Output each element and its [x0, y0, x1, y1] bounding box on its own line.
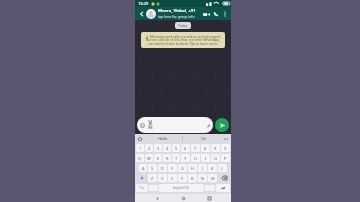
- button[interactable]: L: [218, 164, 227, 172]
- staticText: I: [205, 156, 207, 161]
- staticText: W: [147, 156, 151, 161]
- button[interactable]: 2: [145, 144, 153, 152]
- button[interactable]: Emoji: [137, 117, 213, 133]
- button[interactable]: B: [188, 174, 197, 182]
- staticText: Ok: [201, 136, 206, 141]
- button[interactable]: G: [178, 164, 187, 172]
- staticText: A: [142, 166, 145, 171]
- staticText: Y: [184, 156, 187, 161]
- button[interactable]: 5: [172, 144, 180, 152]
- button[interactable]: .: [149, 185, 158, 191]
- button[interactable]: D: [158, 164, 167, 172]
- staticText: H: [191, 166, 194, 171]
- button[interactable]: ,: [205, 185, 215, 191]
- button[interactable]: Attach: [205, 122, 211, 128]
- button[interactable]: Z: [148, 174, 157, 182]
- staticText: 13:29: [138, 1, 149, 6]
- button[interactable]: 1: [136, 144, 144, 152]
- button[interactable]: Clipboard: [137, 136, 143, 142]
- button[interactable]: 🔒 Messages and calls are end-to-end encr…: [141, 32, 225, 48]
- staticText: C: [171, 176, 174, 181]
- staticText: Hello: [158, 136, 168, 141]
- button[interactable]: H: [188, 164, 197, 172]
- button[interactable]: W: [145, 154, 153, 162]
- button[interactable]: Back: [137, 9, 146, 18]
- staticText: F: [171, 166, 174, 171]
- staticText: L: [221, 166, 224, 171]
- staticText: S: [151, 166, 154, 171]
- button[interactable]: A: [139, 164, 147, 172]
- button[interactable]: V: [178, 174, 187, 182]
- button[interactable]: 3: [154, 144, 162, 152]
- button[interactable]: Recents: [205, 194, 213, 202]
- staticText: ?1①: [139, 186, 145, 190]
- button[interactable]: English (US): [159, 184, 204, 192]
- button[interactable]: K: [208, 164, 217, 172]
- button[interactable]: Ok: [183, 136, 223, 141]
- staticText: 0: [224, 146, 227, 151]
- staticText: 🔒 Messages and calls are end-to-end encr…: [144, 34, 222, 46]
- staticText: 4: [166, 146, 169, 151]
- button[interactable]: Home: [179, 194, 187, 202]
- staticText: M: [211, 176, 215, 181]
- button[interactable]: 8: [201, 144, 210, 152]
- staticText: V: [181, 176, 184, 181]
- button[interactable]: Enter: [216, 184, 230, 192]
- staticText: tap here for group info: [158, 14, 195, 19]
- button[interactable]: Send: [215, 118, 229, 132]
- button[interactable]: N: [198, 174, 207, 182]
- button[interactable]: 4: [163, 144, 171, 152]
- staticText: J: [202, 166, 204, 171]
- staticText: Today: [178, 23, 188, 28]
- button[interactable]: Q: [136, 154, 144, 162]
- button[interactable]: More options: [221, 10, 229, 18]
- staticText: N: [201, 176, 205, 181]
- staticText: .: [153, 186, 155, 191]
- staticText: 3: [157, 146, 160, 151]
- button[interactable]: Profile photo: [146, 9, 156, 19]
- button[interactable]: Hello: [143, 136, 182, 141]
- button[interactable]: Emoji: [139, 122, 145, 128]
- button[interactable]: P: [221, 154, 230, 162]
- button[interactable]: Video call: [201, 9, 211, 19]
- staticText: U: [194, 156, 197, 161]
- staticText: 9: [214, 146, 217, 151]
- staticText: Meera, Vishal, +91 98876 54...: [158, 8, 201, 14]
- button[interactable]: O: [211, 154, 220, 162]
- button[interactable]: U: [191, 154, 200, 162]
- staticText: 7: [194, 146, 197, 151]
- button[interactable]: E: [154, 154, 162, 162]
- button[interactable]: 6: [181, 144, 190, 152]
- button[interactable]: Meera, Vishal, +91 98876 54...: [158, 8, 201, 19]
- button[interactable]: T: [172, 154, 180, 162]
- staticText: English (US): [173, 186, 190, 190]
- button[interactable]: I: [201, 154, 210, 162]
- button[interactable]: Voice call: [211, 9, 221, 19]
- staticText: Z: [151, 176, 154, 181]
- button[interactable]: 9: [211, 144, 220, 152]
- staticText: B: [191, 176, 194, 181]
- button[interactable]: R: [163, 154, 171, 162]
- button[interactable]: ?1①: [136, 184, 148, 192]
- staticText: 2: [148, 146, 151, 151]
- button[interactable]: Shift: [136, 173, 147, 183]
- staticText: X: [161, 176, 164, 181]
- button[interactable]: X: [158, 174, 167, 182]
- staticText: T: [175, 156, 178, 161]
- staticText: 8: [204, 146, 207, 151]
- button[interactable]: M: [208, 174, 217, 182]
- button[interactable]: More suggestions: [223, 136, 229, 142]
- button[interactable]: Y: [181, 154, 190, 162]
- button[interactable]: 7: [191, 144, 200, 152]
- button[interactable]: J: [198, 164, 207, 172]
- button[interactable]: F: [168, 164, 177, 172]
- button[interactable]: Back: [153, 194, 161, 202]
- button[interactable]: S: [148, 164, 157, 172]
- staticText: E: [157, 156, 160, 161]
- staticText: 6: [184, 146, 187, 151]
- button[interactable]: 0: [221, 144, 230, 152]
- button[interactable]: Backspace: [218, 173, 230, 183]
- staticText: G: [181, 166, 184, 171]
- button[interactable]: C: [168, 174, 177, 182]
- staticText: R: [166, 156, 169, 161]
